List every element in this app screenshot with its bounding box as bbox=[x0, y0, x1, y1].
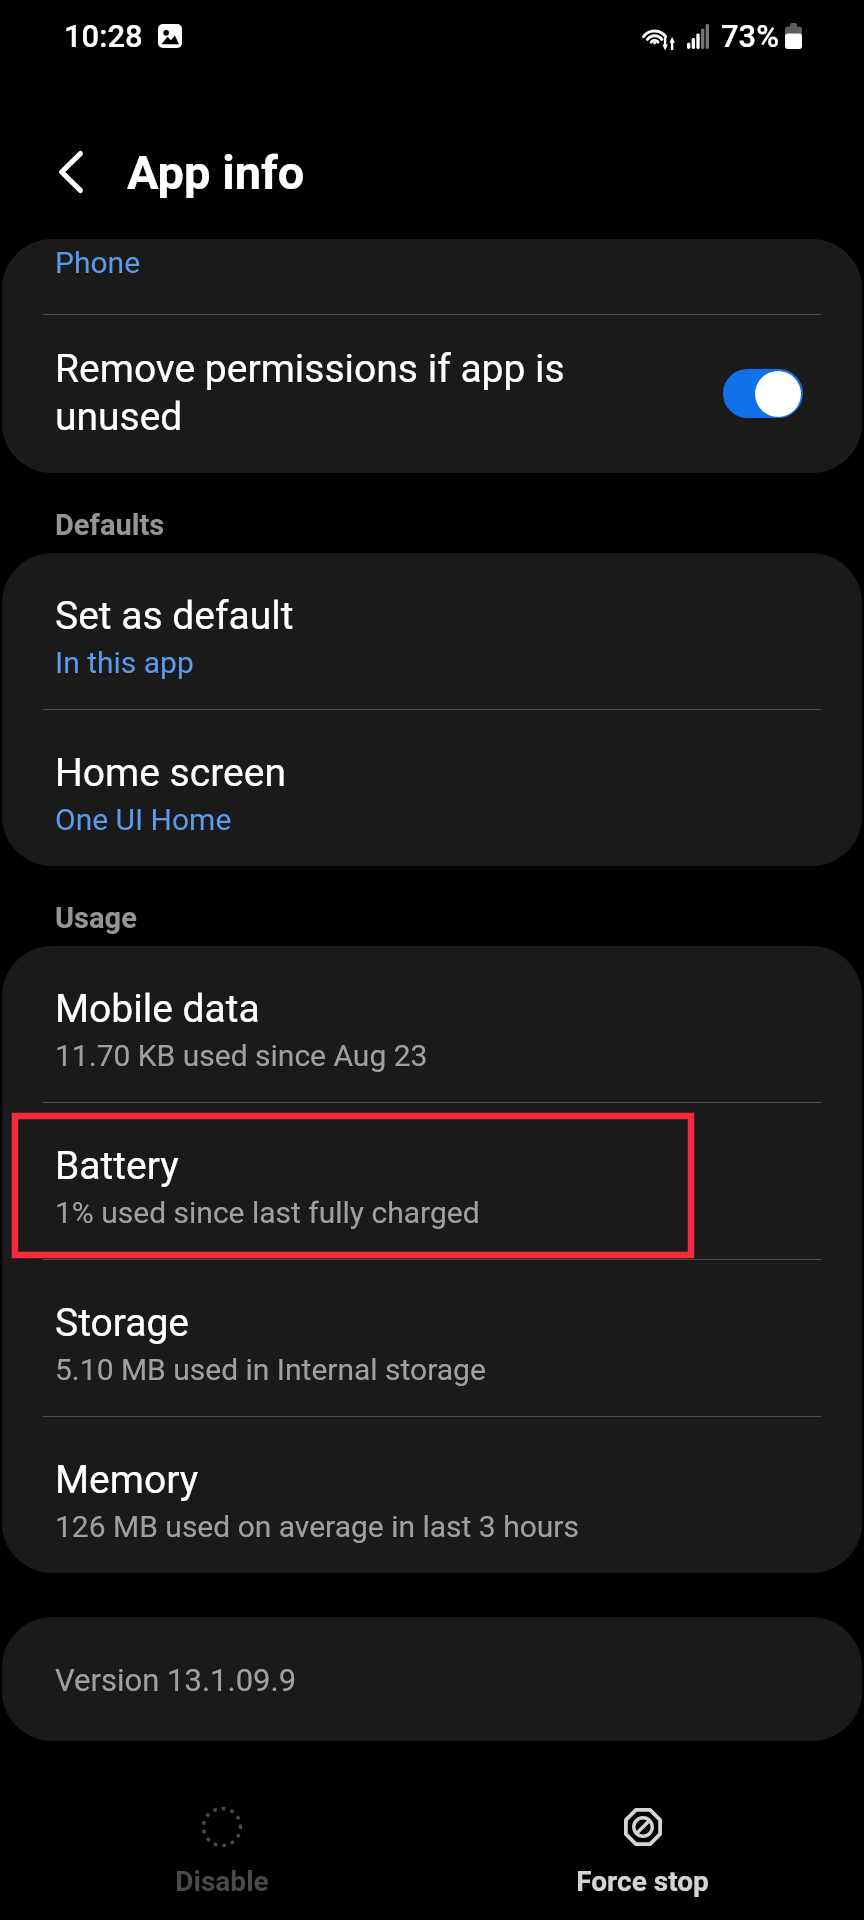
staticText: Mobile data bbox=[55, 986, 260, 1032]
staticText: 11.70 KB used since Aug 23 bbox=[55, 1038, 428, 1073]
staticText: Version 13.1.09.9 bbox=[55, 1662, 297, 1698]
staticText: Set as default bbox=[55, 593, 294, 639]
staticText: Usage bbox=[55, 901, 137, 935]
button[interactable]: Back bbox=[25, 126, 117, 218]
button[interactable]: Remove permissions toggle bbox=[723, 369, 803, 418]
button[interactable]: Remove permissions if app is unused bbox=[2, 315, 862, 473]
button[interactable]: Mobile data bbox=[2, 946, 862, 1102]
button[interactable]: Set as default bbox=[2, 553, 862, 709]
staticText: 73% bbox=[721, 18, 780, 54]
staticText: Disable bbox=[175, 1865, 269, 1898]
button[interactable]: Storage bbox=[2, 1260, 862, 1416]
staticText: Home screen bbox=[55, 750, 286, 796]
staticText: App info bbox=[127, 145, 305, 200]
staticText: 10:28 bbox=[64, 18, 143, 54]
staticText: Storage bbox=[55, 1300, 190, 1346]
staticText: Defaults bbox=[55, 508, 165, 542]
button[interactable]: Disable bbox=[11, 1741, 432, 1920]
staticText: Battery bbox=[55, 1143, 179, 1189]
button[interactable]: Home screen bbox=[2, 710, 862, 866]
staticText: Remove permissions if app is unused bbox=[55, 346, 645, 440]
staticText: 126 MB used on average in last 3 hours bbox=[55, 1509, 579, 1544]
button[interactable]: Battery bbox=[2, 1103, 862, 1259]
staticText: Memory bbox=[55, 1457, 199, 1503]
staticText: One UI Home bbox=[55, 802, 232, 837]
staticText: 1% used since last fully charged bbox=[55, 1195, 480, 1230]
button[interactable]: Force stop bbox=[432, 1741, 853, 1920]
staticText: Phone bbox=[55, 245, 141, 280]
staticText: 5.10 MB used in Internal storage bbox=[55, 1352, 486, 1387]
button[interactable]: Memory bbox=[2, 1417, 862, 1573]
staticText: In this app bbox=[55, 645, 194, 680]
staticText: Force stop bbox=[576, 1865, 709, 1898]
